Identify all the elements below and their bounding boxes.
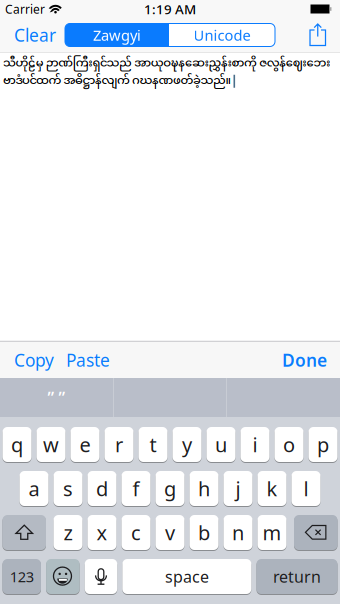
staticText: e (79, 431, 90, 458)
staticText: Carrier (5, 1, 45, 17)
staticText: Copy (14, 348, 54, 371)
button[interactable]: v (155, 515, 184, 550)
staticText: 1:19 AM (144, 0, 196, 18)
staticText: n (232, 519, 244, 546)
button[interactable]: Paste (66, 348, 110, 371)
button[interactable]: y (172, 427, 201, 462)
button[interactable]: Clear (0, 23, 56, 46)
button[interactable]: Share (309, 23, 340, 47)
button[interactable]: q (2, 427, 31, 462)
button[interactable]: s (53, 471, 82, 506)
button[interactable]: Delete (294, 515, 337, 550)
staticText: return (273, 566, 321, 587)
button[interactable]: h (189, 471, 218, 506)
staticText: Zawgyi (93, 25, 141, 45)
staticText: p (317, 431, 329, 458)
button[interactable]: return (256, 559, 337, 594)
staticText: q (11, 431, 23, 458)
button[interactable]: k (257, 471, 286, 506)
button[interactable]: Copy (14, 348, 54, 371)
staticText: w (43, 431, 59, 458)
button[interactable]: u (206, 427, 235, 462)
staticText: t (149, 431, 156, 458)
staticText: y (182, 431, 192, 458)
button[interactable]: 123 (2, 559, 41, 594)
button[interactable]: Dictate (85, 559, 117, 594)
button[interactable]: p (308, 427, 337, 462)
staticText: 123 (10, 567, 34, 586)
staticText: l (303, 475, 308, 502)
staticText: k (266, 475, 277, 502)
staticText: ” ” (47, 387, 65, 408)
staticText: x (96, 519, 107, 546)
button[interactable]: z (53, 515, 82, 550)
staticText: Done (282, 348, 327, 371)
staticText: သီဟိုဠ်မှ ဉာဏ်ကြီးရှင်သည် အာယုဝဍ္ဎနဆေးညွ… (3, 54, 330, 74)
button[interactable]: d (87, 471, 116, 506)
staticText: c (131, 519, 141, 546)
button[interactable]: r (104, 427, 133, 462)
staticText: s (63, 475, 73, 502)
button[interactable]: space (122, 559, 251, 594)
button[interactable]: a (19, 471, 48, 506)
button[interactable]: Unicode (169, 23, 275, 46)
button[interactable]: Done (282, 348, 327, 371)
staticText: b (198, 519, 210, 546)
button[interactable]: l (291, 471, 320, 506)
button[interactable]: x (87, 515, 116, 550)
button[interactable]: f (121, 471, 150, 506)
button[interactable]: i (240, 427, 269, 462)
staticText: Paste (66, 348, 110, 371)
staticText: j (235, 475, 240, 502)
button[interactable]: Shift (2, 515, 46, 550)
staticText: Unicode (193, 25, 250, 45)
button[interactable]: m (257, 515, 286, 550)
button[interactable]: e (70, 427, 99, 462)
button[interactable]: n (223, 515, 252, 550)
button[interactable]: g (155, 471, 184, 506)
staticText: m (262, 519, 281, 546)
button[interactable]: Emoji (46, 559, 80, 594)
staticText: z (63, 519, 72, 546)
staticText: g (164, 475, 176, 502)
staticText: h (198, 475, 210, 502)
staticText: f (132, 475, 139, 502)
button[interactable]: Zawgyi (65, 23, 169, 46)
staticText: i (252, 431, 257, 458)
button[interactable]: o (274, 427, 303, 462)
button[interactable]: j (223, 471, 252, 506)
button[interactable]: t (138, 427, 167, 462)
staticText: Clear (14, 23, 56, 46)
staticText: a (28, 475, 39, 502)
staticText: o (283, 431, 295, 458)
staticText: ဗာဒံပင်ထက် အဓိဋ္ဌာန်လျက် ဂဃနဏဖတ်ခဲ့သည်။ (3, 71, 231, 91)
staticText: d (96, 475, 108, 502)
button[interactable]: b (189, 515, 218, 550)
staticText: u (215, 431, 227, 458)
staticText: v (165, 519, 175, 546)
staticText: r (115, 431, 123, 458)
button[interactable]: c (121, 515, 150, 550)
button[interactable]: ” ” (0, 378, 113, 417)
staticText: space (165, 566, 209, 587)
button[interactable]: w (36, 427, 65, 462)
